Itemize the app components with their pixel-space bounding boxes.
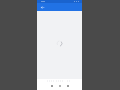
button[interactable]: Navigate up bbox=[39, 4, 45, 10]
button[interactable]: Home bbox=[46, 80, 55, 84]
button[interactable]: Back bbox=[49, 83, 55, 89]
button[interactable]: Home bbox=[57, 83, 63, 89]
button[interactable]: Recent apps bbox=[65, 83, 71, 89]
button[interactable]: Explore bbox=[55, 80, 64, 84]
button[interactable]: Saved bbox=[64, 80, 73, 84]
